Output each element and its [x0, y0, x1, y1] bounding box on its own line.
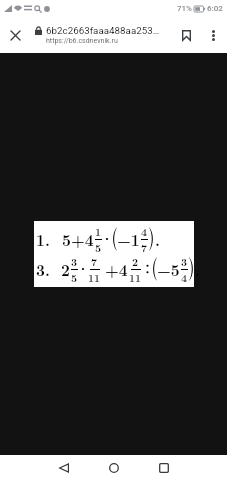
staticText: 11 — [129, 270, 142, 284]
button[interactable]: Close — [0, 20, 30, 50]
staticText: 1 — [95, 224, 102, 239]
staticText: 4 — [181, 270, 188, 284]
staticText: −1 — [117, 228, 140, 250]
button[interactable]: Recent apps — [144, 455, 184, 480]
button[interactable]: Home — [94, 455, 134, 480]
staticText: 1. — [36, 228, 50, 250]
staticText: 4 — [141, 224, 148, 239]
button[interactable]: Bookmark — [171, 20, 201, 50]
staticText: 5 — [95, 240, 102, 254]
staticText: 6b2c2663faaa488aa253… — [46, 25, 160, 36]
staticText: https://b6.csdnevnik.ru — [46, 37, 118, 45]
staticText: 2 — [61, 258, 70, 280]
staticText: 3 — [181, 254, 188, 269]
staticText: 7 — [141, 240, 148, 254]
staticText: 5 — [71, 270, 78, 284]
staticText: 6:02 — [207, 4, 223, 13]
staticText: 3 — [71, 254, 78, 269]
staticText: +4 — [105, 258, 128, 280]
staticText: 11 — [88, 270, 101, 284]
button[interactable]: More options — [201, 23, 226, 48]
button[interactable]: Back — [44, 455, 84, 480]
staticText: . — [155, 228, 160, 250]
staticText: 3. — [36, 258, 50, 280]
staticText: 7 — [91, 254, 98, 269]
staticText: 2 — [132, 254, 139, 269]
staticText: −5 — [157, 258, 180, 280]
staticText: 71% — [177, 4, 192, 13]
staticText: 5+4 — [62, 228, 94, 250]
